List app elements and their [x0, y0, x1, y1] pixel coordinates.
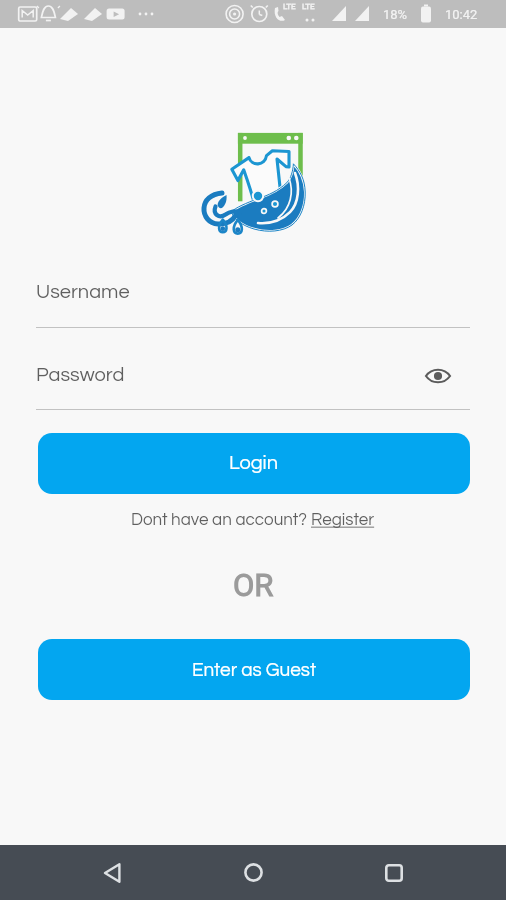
button[interactable]: Register	[311, 511, 375, 529]
staticText: OR	[233, 567, 274, 603]
staticText: Enter as Guest	[192, 660, 317, 680]
button[interactable]: Back	[85, 845, 141, 900]
staticText: Login	[229, 453, 279, 474]
staticText: Username	[36, 282, 130, 303]
staticText: Register	[311, 511, 375, 529]
button[interactable]: Recent apps	[366, 845, 422, 900]
staticText: Password	[36, 365, 125, 386]
button[interactable]: Login	[38, 433, 470, 494]
staticText: LTE	[302, 2, 315, 11]
button[interactable]: Show password	[420, 358, 456, 394]
staticText: Dont have an account?	[131, 511, 311, 529]
staticText: 18%	[383, 7, 408, 22]
button[interactable]: Home	[225, 845, 281, 900]
staticText: 10:42	[445, 7, 478, 22]
staticText: LTE	[283, 2, 296, 11]
button[interactable]: Enter as Guest	[38, 639, 470, 700]
